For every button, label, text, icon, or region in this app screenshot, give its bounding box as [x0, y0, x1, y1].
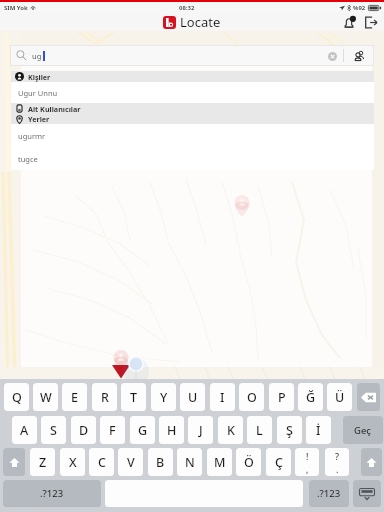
staticText: I	[220, 389, 225, 406]
button[interactable]: Shift	[361, 448, 382, 476]
button[interactable]: M	[207, 448, 232, 476]
staticText: ugurmr	[18, 131, 46, 141]
button[interactable]: J	[188, 416, 213, 444]
staticText: Z	[39, 454, 47, 471]
button[interactable]: Geç	[343, 416, 383, 444]
button[interactable]: Q	[4, 383, 29, 411]
button[interactable]: Z	[30, 448, 55, 476]
button[interactable]: C	[89, 448, 114, 476]
staticText: X	[69, 454, 77, 471]
button[interactable]: A	[12, 416, 37, 444]
staticText: J	[199, 422, 203, 439]
staticText: F	[109, 422, 116, 439]
staticText: N	[185, 454, 195, 471]
staticText: .?123	[40, 487, 64, 500]
staticText: ?	[335, 450, 340, 462]
button[interactable]: tugce	[11, 147, 374, 170]
staticText: C	[98, 454, 106, 471]
staticText: H	[167, 422, 177, 439]
staticText: Y	[160, 389, 168, 406]
button[interactable]: U	[180, 383, 205, 411]
staticText: Ö	[244, 454, 254, 471]
staticText: P	[278, 389, 286, 406]
button[interactable]: V	[118, 448, 143, 476]
button[interactable]: Yerler	[11, 114, 374, 124]
button[interactable]: G	[130, 416, 155, 444]
staticText: S	[50, 422, 57, 439]
staticText: .	[336, 463, 339, 475]
staticText: İ	[316, 422, 321, 439]
staticText: B	[156, 454, 165, 471]
staticText: SIM Yok	[4, 4, 28, 12]
staticText: ug	[32, 51, 42, 61]
staticText: E	[71, 389, 78, 406]
button[interactable]: Ğ	[298, 383, 323, 411]
button[interactable]: Kişiler	[11, 71, 374, 82]
button[interactable]: ?	[325, 448, 349, 476]
button[interactable]: P	[269, 383, 294, 411]
button[interactable]: B	[148, 448, 173, 476]
staticText: U	[188, 389, 198, 406]
button[interactable]: Notifications	[340, 14, 357, 31]
staticText: Yerler	[28, 114, 50, 124]
button[interactable]: Shift	[3, 448, 25, 476]
button[interactable]: S	[41, 416, 66, 444]
staticText: A	[20, 422, 29, 439]
staticText: Q	[12, 389, 22, 406]
staticText: G	[138, 422, 148, 439]
staticText: O	[247, 389, 257, 406]
button[interactable]: Ş	[277, 416, 302, 444]
button[interactable]: ugurmr	[11, 124, 374, 147]
staticText: R	[101, 389, 109, 406]
staticText: K	[227, 422, 235, 439]
staticText: tugce	[18, 154, 38, 164]
button[interactable]: H	[159, 416, 184, 444]
staticText: Alt Kullanıcılar	[28, 104, 81, 114]
staticText: W	[40, 389, 52, 406]
button[interactable]: T	[121, 383, 146, 411]
button[interactable]: L	[247, 416, 272, 444]
button[interactable]: E	[62, 383, 87, 411]
button[interactable]: Log out	[362, 14, 379, 31]
button[interactable]: D	[71, 416, 96, 444]
button[interactable]: X	[60, 448, 85, 476]
staticText: Ugur Unnu	[18, 88, 58, 98]
button[interactable]: Ugur Unnu	[11, 82, 374, 103]
staticText: 08:32	[179, 4, 195, 12]
button[interactable]: K	[218, 416, 243, 444]
staticText: M	[214, 454, 226, 471]
button[interactable]: Ö	[236, 448, 261, 476]
button[interactable]: .?123	[309, 480, 349, 507]
staticText: T	[130, 389, 138, 406]
staticText: Locate	[180, 13, 221, 31]
staticText: V	[127, 454, 135, 471]
button[interactable]: Backspace	[357, 383, 380, 411]
button[interactable]: O	[239, 383, 264, 411]
button[interactable]: Ü	[327, 383, 352, 411]
staticText: Geç	[354, 424, 372, 437]
staticText: ,	[306, 463, 309, 475]
staticText: %92	[353, 4, 366, 12]
staticText: D	[79, 422, 89, 439]
button[interactable]: ug	[10, 45, 374, 66]
button[interactable]: Ç	[266, 448, 291, 476]
staticText: !	[306, 450, 309, 462]
staticText: Ç	[275, 454, 283, 471]
staticText: Ş	[286, 422, 293, 439]
button[interactable]: Y	[151, 383, 176, 411]
button[interactable]: I	[210, 383, 235, 411]
staticText: Kişiler	[28, 72, 51, 82]
button[interactable]: Clear search	[323, 47, 341, 65]
button[interactable]: F	[100, 416, 125, 444]
button[interactable]: !	[295, 448, 319, 476]
button[interactable]: R	[92, 383, 117, 411]
button[interactable]: W	[33, 383, 58, 411]
button[interactable]: İ	[306, 416, 331, 444]
button[interactable]: Hide keyboard	[353, 480, 381, 507]
button[interactable]: N	[177, 448, 202, 476]
button[interactable]: Contacts	[344, 45, 374, 66]
button[interactable]: Alt Kullanıcılar	[11, 103, 374, 114]
staticText: L	[256, 422, 263, 439]
button[interactable]: .?123	[3, 480, 101, 507]
